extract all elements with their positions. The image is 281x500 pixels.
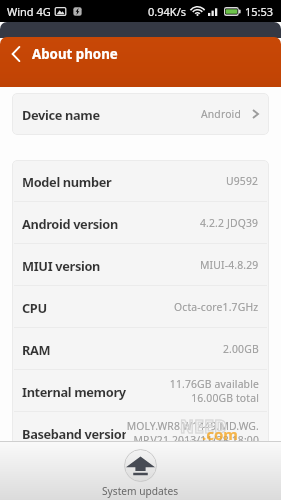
staticText: CPU (22, 299, 47, 316)
staticText: 4.2.2 JDQ39 (200, 216, 259, 230)
staticText: MOLY.WR8.W1449.MD.WG. (126, 419, 259, 433)
staticText: 0.94K/s (148, 4, 186, 19)
staticText: U9592 (226, 174, 259, 188)
button[interactable]: Back (1, 39, 31, 69)
staticText: Baseband version (22, 425, 126, 442)
staticText: 2.00GB (223, 342, 259, 356)
button[interactable]: Model number (12, 160, 269, 202)
staticText: 15:53 (245, 4, 274, 19)
staticText: Model number (22, 173, 112, 190)
staticText: Device name (22, 106, 100, 123)
button[interactable]: Android version (12, 202, 269, 244)
staticText: Wind 4G (7, 4, 51, 19)
button[interactable]: MIUI version (12, 244, 269, 286)
staticText: .com (202, 424, 238, 444)
staticText: NEED (180, 415, 228, 438)
staticText: System updates (102, 484, 179, 498)
staticText: 11.76GB available (169, 377, 259, 391)
staticText: 16.00GB total (191, 391, 259, 405)
button[interactable]: RAM (12, 328, 269, 370)
staticText: Internal memory (22, 383, 126, 400)
staticText: Octa-core1.7GHz (174, 300, 259, 314)
staticText: About phone (32, 45, 118, 63)
staticText: www.newed.com (178, 437, 231, 446)
staticText: MIUI-4.8.29 (200, 258, 259, 272)
button[interactable]: Baseband version (12, 412, 269, 454)
staticText: RAM (22, 341, 51, 358)
staticText: Android version (22, 215, 118, 232)
button[interactable]: System updates (102, 449, 179, 498)
staticText: MP.V21.2013/11/28.18:00 (133, 433, 259, 447)
button[interactable]: Internal memory (12, 370, 269, 412)
button[interactable]: Device name (12, 93, 269, 135)
staticText: Android (201, 107, 241, 121)
staticText: MIUI version (22, 257, 101, 274)
button[interactable]: CPU (12, 286, 269, 328)
